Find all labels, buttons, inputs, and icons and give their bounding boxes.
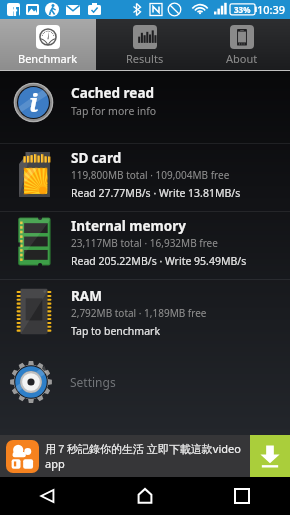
staticText: Read 205.22MB/s · Write 95.49MB/s <box>71 254 247 268</box>
button[interactable]: SD card <box>0 144 290 211</box>
button[interactable]: 用７秒記錄你的生活 立即下載這款video <box>0 435 290 477</box>
staticText: SD card <box>71 149 122 167</box>
button[interactable]: Benchmark <box>0 19 96 70</box>
staticText: Cached read <box>71 84 155 102</box>
button[interactable]: i <box>0 71 290 143</box>
staticText: 10:39 <box>257 2 286 17</box>
button[interactable]: Internal memory <box>0 212 290 279</box>
staticText: Tap for more info <box>71 104 157 118</box>
button[interactable]: About <box>193 19 290 70</box>
button[interactable]: Recent apps <box>193 477 290 515</box>
button[interactable]: Back <box>0 477 96 515</box>
staticText: Read 27.77MB/s · Write 13.81MB/s <box>71 186 241 200</box>
button[interactable]: Results <box>96 19 193 70</box>
staticText: i <box>29 84 39 119</box>
button[interactable]: RAM <box>0 280 290 347</box>
staticText: app <box>45 456 65 471</box>
staticText: Results <box>126 51 164 66</box>
staticText: Settings <box>70 374 116 390</box>
staticText: 33% <box>234 4 251 15</box>
button[interactable]: Settings <box>0 347 290 409</box>
staticText: 用７秒記錄你的生活 立即下載這款video <box>45 441 241 456</box>
staticText: RAM <box>71 287 102 305</box>
staticText: Internal memory <box>71 217 186 235</box>
staticText: Benchmark <box>18 51 78 66</box>
staticText: 23,117MB total · 16,932MB free <box>71 236 218 250</box>
staticText: Tap to benchmark <box>71 324 160 338</box>
staticText: 119,800MB total · 109,004MB free <box>71 168 230 182</box>
staticText: About <box>226 51 258 66</box>
button[interactable]: Download <box>250 435 290 477</box>
button[interactable]: Home <box>96 477 193 515</box>
staticText: 2,792MB total · 1,189MB free <box>71 306 207 320</box>
